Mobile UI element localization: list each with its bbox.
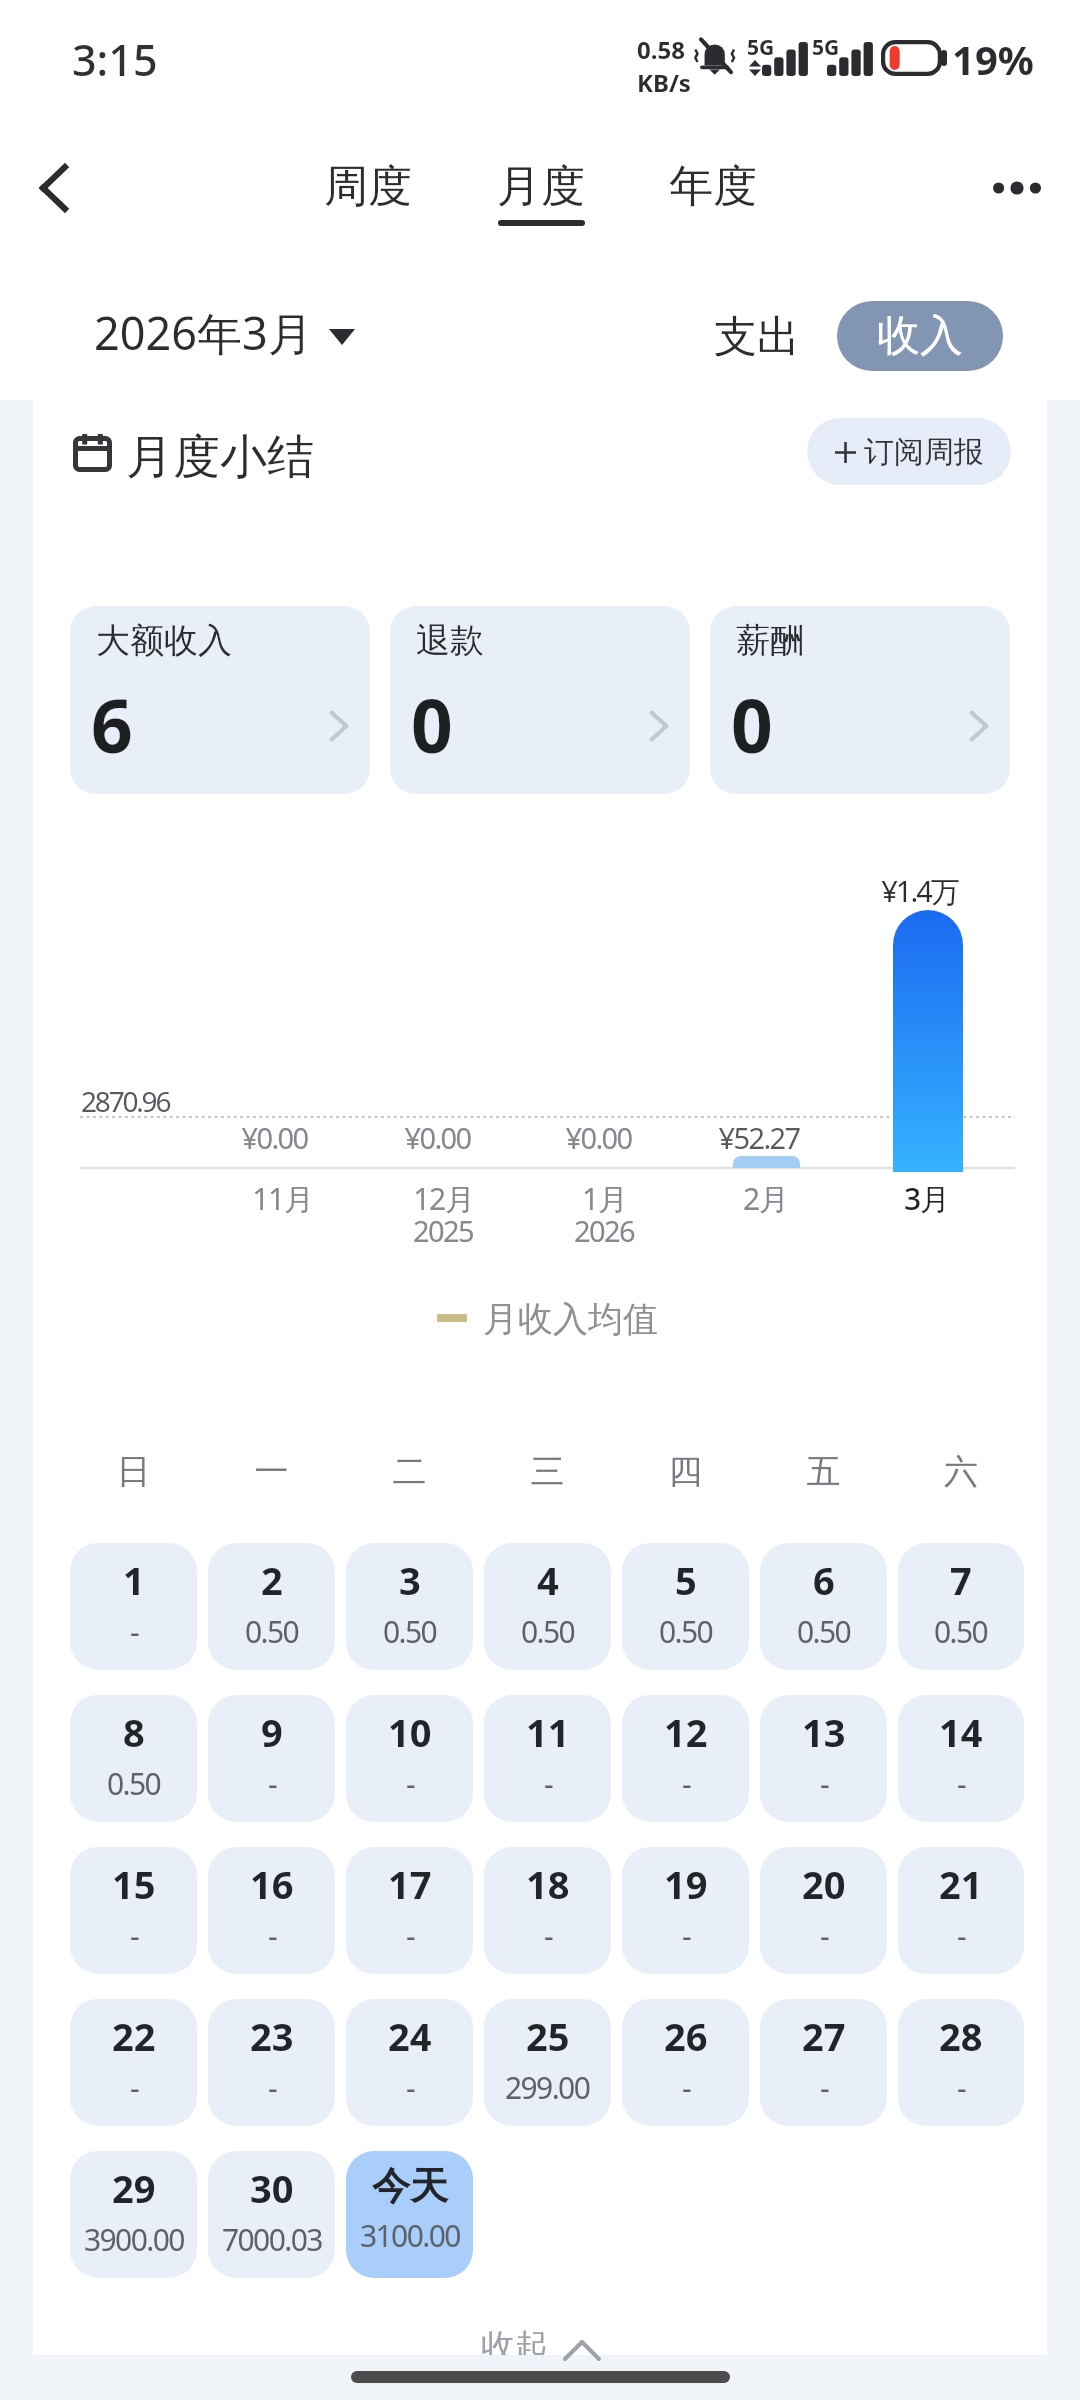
- button[interactable]: 6: [760, 1543, 887, 1670]
- button[interactable]: Back: [16, 150, 92, 226]
- button[interactable]: 月度: [457, 159, 625, 226]
- staticText: 月收入均值: [483, 1297, 658, 1341]
- staticText: 六: [898, 1450, 1024, 1493]
- button[interactable]: 收入: [837, 301, 1003, 371]
- staticText: 0.50: [934, 1611, 988, 1652]
- staticText: 30: [250, 2162, 294, 2214]
- staticText: -: [957, 2067, 966, 2108]
- staticText: -: [957, 1915, 966, 1956]
- button[interactable]: 16: [208, 1847, 335, 1974]
- staticText: 3900.00: [84, 2219, 184, 2260]
- staticText: 7000.03: [222, 2219, 322, 2260]
- button[interactable]: 2: [208, 1543, 335, 1670]
- button[interactable]: 薪酬: [710, 606, 1010, 794]
- button[interactable]: 2026年3月: [94, 302, 355, 363]
- staticText: -: [682, 2067, 691, 2108]
- staticText: 11月: [252, 1178, 313, 1219]
- staticText: 月度小结: [126, 428, 314, 487]
- button[interactable]: 25: [484, 1999, 611, 2126]
- staticText: -: [406, 1915, 415, 1956]
- button[interactable]: 14: [898, 1695, 1024, 1822]
- button[interactable]: 19: [622, 1847, 749, 1974]
- staticText: 26: [664, 2010, 708, 2062]
- button[interactable]: 28: [898, 1999, 1024, 2126]
- staticText: 2: [261, 1554, 283, 1606]
- staticText: 29: [112, 2162, 156, 2214]
- staticText: 2026: [574, 1211, 634, 1250]
- button[interactable]: 30: [208, 2151, 335, 2278]
- staticText: 日: [70, 1450, 197, 1493]
- button[interactable]: 17: [346, 1847, 473, 1974]
- button[interactable]: 大额收入: [70, 606, 370, 794]
- button[interactable]: 26: [622, 1999, 749, 2126]
- button[interactable]: 22: [70, 1999, 197, 2126]
- staticText: 收入: [877, 309, 963, 363]
- staticText: 12: [664, 1706, 708, 1758]
- staticText: 3: [399, 1554, 421, 1606]
- staticText: ¥1.4万: [881, 871, 958, 911]
- staticText: 四: [622, 1450, 749, 1493]
- button[interactable]: 3: [346, 1543, 473, 1670]
- button[interactable]: More options: [977, 148, 1057, 228]
- staticText: 2870.96: [81, 1082, 170, 1120]
- staticText: 27: [802, 2010, 846, 2062]
- staticText: -: [268, 1915, 277, 1956]
- staticText: 支出: [714, 310, 800, 364]
- button[interactable]: 24: [346, 1999, 473, 2126]
- staticText: 5G: [812, 33, 840, 62]
- staticText: -: [406, 1763, 415, 1804]
- button[interactable]: 21: [898, 1847, 1024, 1974]
- button[interactable]: 月收入均值: [437, 1297, 658, 1343]
- button[interactable]: 18: [484, 1847, 611, 1974]
- button[interactable]: 1: [70, 1543, 197, 1670]
- staticText: 0.50: [245, 1611, 299, 1652]
- staticText: 28: [939, 2010, 983, 2062]
- staticText: 周度: [324, 159, 412, 214]
- button[interactable]: 今天: [346, 2151, 473, 2278]
- button[interactable]: 12: [622, 1695, 749, 1822]
- staticText: 三: [484, 1450, 611, 1493]
- staticText: 12月: [413, 1178, 474, 1219]
- button[interactable]: 15: [70, 1847, 197, 1974]
- button[interactable]: 周度: [284, 159, 452, 226]
- button[interactable]: 10: [346, 1695, 473, 1822]
- staticText: 2月: [743, 1178, 788, 1219]
- button[interactable]: 8: [70, 1695, 197, 1822]
- staticText: 9: [261, 1706, 283, 1758]
- staticText: -: [820, 2067, 829, 2108]
- button[interactable]: 7: [898, 1543, 1024, 1670]
- button[interactable]: 年度: [629, 159, 797, 226]
- button[interactable]: 5: [622, 1543, 749, 1670]
- staticText: 五: [760, 1450, 887, 1493]
- button[interactable]: 退款: [390, 606, 690, 794]
- button[interactable]: 23: [208, 1999, 335, 2126]
- staticText: 19: [664, 1858, 708, 1910]
- staticText: 19%: [952, 32, 1034, 86]
- staticText: ¥0.00: [565, 1118, 632, 1157]
- staticText: 299.00: [505, 2067, 590, 2108]
- staticText: 5: [675, 1554, 697, 1606]
- button[interactable]: 收起: [33, 2325, 1047, 2355]
- staticText: 3:15: [72, 30, 158, 89]
- button[interactable]: 27: [760, 1999, 887, 2126]
- staticText: -: [406, 2067, 415, 2108]
- button[interactable]: 13: [760, 1695, 887, 1822]
- staticText: ¥52.27: [718, 1118, 800, 1157]
- staticText: 收起: [481, 2325, 549, 2355]
- staticText: -: [268, 2067, 277, 2108]
- button[interactable]: 订阅周报: [807, 418, 1011, 485]
- button[interactable]: 29: [70, 2151, 197, 2278]
- staticText: KB/s: [637, 66, 691, 99]
- button[interactable]: 11: [484, 1695, 611, 1822]
- button[interactable]: 支出: [696, 296, 818, 378]
- staticText: 15: [112, 1858, 156, 1910]
- staticText: 薪酬: [736, 619, 804, 662]
- staticText: 3月: [904, 1178, 949, 1219]
- staticText: 14: [939, 1706, 983, 1758]
- button[interactable]: 9: [208, 1695, 335, 1822]
- staticText: 7: [950, 1554, 972, 1606]
- button[interactable]: 20: [760, 1847, 887, 1974]
- staticText: 18: [526, 1858, 570, 1910]
- button[interactable]: 4: [484, 1543, 611, 1670]
- staticText: 0.50: [659, 1611, 713, 1652]
